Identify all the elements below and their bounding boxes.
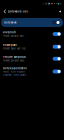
staticText: Dotykové ovl. [8, 10, 29, 13]
staticText: Doplnění, který zadáte [3, 74, 26, 76]
staticText: Provést další akci teď [3, 47, 26, 50]
button[interactable]: More options [59, 11, 61, 12]
staticText: Dotyk a podržení [3, 67, 27, 70]
staticText: Trojité klepnutí [3, 56, 26, 59]
button[interactable]: Back [3, 9, 6, 13]
button[interactable]: Klepnutí [0, 27, 64, 41]
staticText: Klepnutí [3, 31, 16, 34]
staticText: Provést aktuální akci [3, 35, 24, 37]
button[interactable]: Trojité klepnutí [0, 52, 64, 65]
button[interactable]: Poklepání [0, 41, 64, 52]
staticText: ◦ ◎ ▣ ◈ ▪ ▪ ▮ ▯ [43, 2, 61, 5]
staticText: Poklepání [3, 44, 17, 47]
button[interactable]: Dotyk a podržení [0, 65, 64, 78]
button[interactable]: Dotykové [1, 18, 63, 27]
staticText: Vybrat, který klepnete [3, 70, 25, 73]
staticText: Provést položení akce [3, 59, 24, 62]
staticText: Dotykové [4, 21, 17, 24]
